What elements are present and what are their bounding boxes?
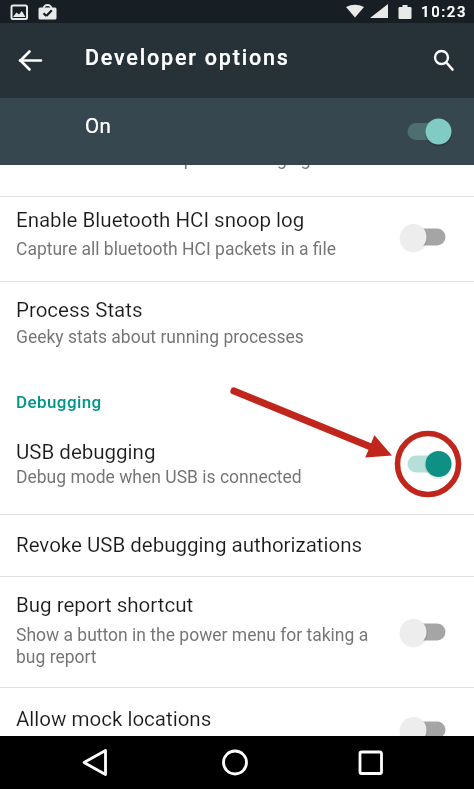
button[interactable] xyxy=(0,576,474,687)
button[interactable] xyxy=(0,687,474,736)
button[interactable] xyxy=(0,281,474,371)
staticText: Bug report shortcut xyxy=(16,593,194,617)
staticText: Debugging xyxy=(16,392,102,412)
staticText: Debug mode when USB is connected xyxy=(16,467,302,488)
staticText: Allow mock locations xyxy=(16,707,212,731)
staticText: Enable Bluetooth HCI snoop log xyxy=(16,208,305,232)
button[interactable] xyxy=(0,420,474,514)
button[interactable] xyxy=(424,42,462,80)
button[interactable] xyxy=(347,738,395,786)
staticText: Process Stats xyxy=(16,298,143,322)
staticText: Show a button in the power menu for taki… xyxy=(16,625,369,668)
staticText: On xyxy=(85,114,112,138)
staticText: Screen will never sleep while charging xyxy=(17,149,311,170)
button[interactable] xyxy=(0,514,474,576)
staticText: 10:23 xyxy=(421,3,468,21)
button[interactable] xyxy=(71,738,119,786)
staticText: USB debugging xyxy=(16,440,156,464)
button[interactable] xyxy=(211,738,259,786)
button[interactable] xyxy=(0,196,474,281)
staticText: Revoke USB debugging authorizations xyxy=(16,533,363,557)
staticText: Developer options xyxy=(85,45,290,70)
staticText: Geeky stats about running processes xyxy=(16,327,304,348)
button[interactable] xyxy=(0,98,474,165)
button[interactable] xyxy=(12,42,50,80)
staticText: Capture all bluetooth HCI packets in a f… xyxy=(16,239,337,260)
